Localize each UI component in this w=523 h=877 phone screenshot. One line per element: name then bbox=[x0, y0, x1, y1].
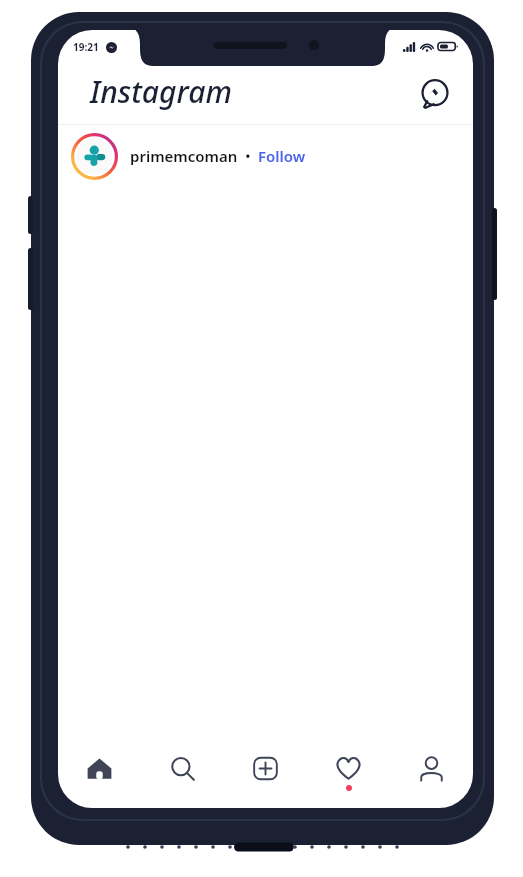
staticText: primemcoman bbox=[130, 146, 238, 166]
staticText: • bbox=[245, 146, 251, 166]
button[interactable]: Follow bbox=[258, 146, 306, 166]
button[interactable]: Home bbox=[58, 740, 141, 802]
button[interactable]: Search bbox=[141, 740, 224, 802]
staticText: Instagram bbox=[90, 71, 232, 112]
button[interactable]: Create new post bbox=[224, 740, 307, 802]
staticText: 19:21 bbox=[73, 40, 99, 54]
staticText: Follow bbox=[258, 146, 306, 166]
button[interactable]: Activity bbox=[307, 740, 390, 802]
button[interactable]: Profile bbox=[390, 740, 473, 802]
button[interactable]: Messenger bbox=[417, 76, 453, 112]
button[interactable]: primemcoman bbox=[58, 125, 473, 187]
